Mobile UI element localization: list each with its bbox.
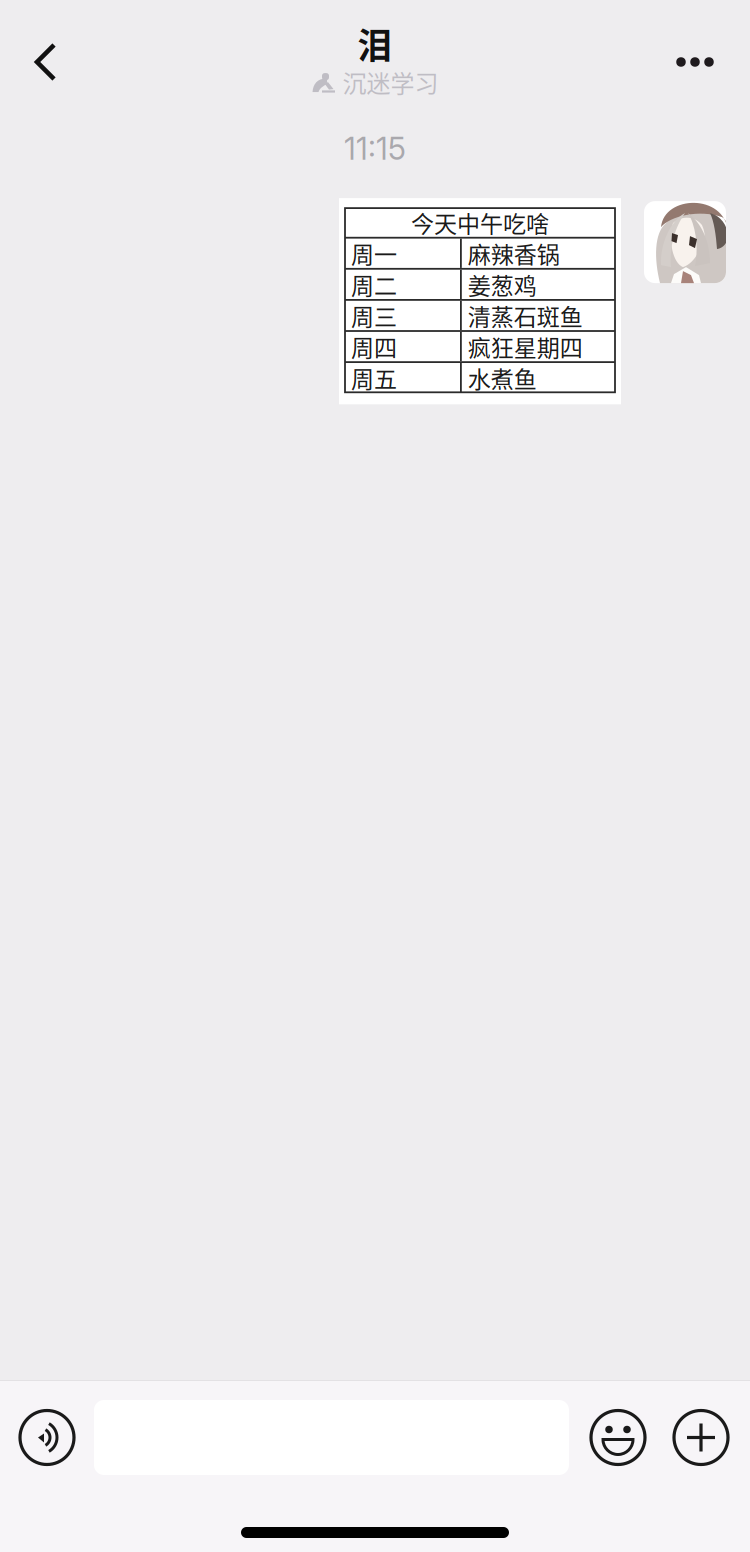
button[interactable]: 泪's profile photo [644,201,726,283]
staticText: 周四 [351,330,397,363]
button[interactable]: Image message: 今天中午吃啥 [339,198,621,404]
staticText: 疯狂星期四 [468,330,583,363]
staticText: 周五 [351,361,397,394]
staticText: 11:15 [344,130,406,167]
button[interactable]: More [665,32,725,92]
staticText: 泪 [357,18,392,69]
staticText: 沉迷学习 [342,65,438,99]
staticText: 水煮鱼 [468,361,537,394]
button[interactable]: Back [14,30,74,90]
staticText: 今天中午吃啥 [411,206,549,239]
staticText: 麻辣香锅 [468,237,560,270]
button[interactable]: More options [674,1410,728,1464]
staticText: 周三 [351,299,397,332]
staticText: 姜葱鸡 [468,268,537,301]
staticText: 周二 [351,268,397,301]
staticText: 周一 [351,237,397,270]
staticText: 清蒸石斑鱼 [468,299,583,332]
button[interactable]: Emoji [591,1410,645,1464]
button[interactable]: Voice message [20,1410,74,1464]
